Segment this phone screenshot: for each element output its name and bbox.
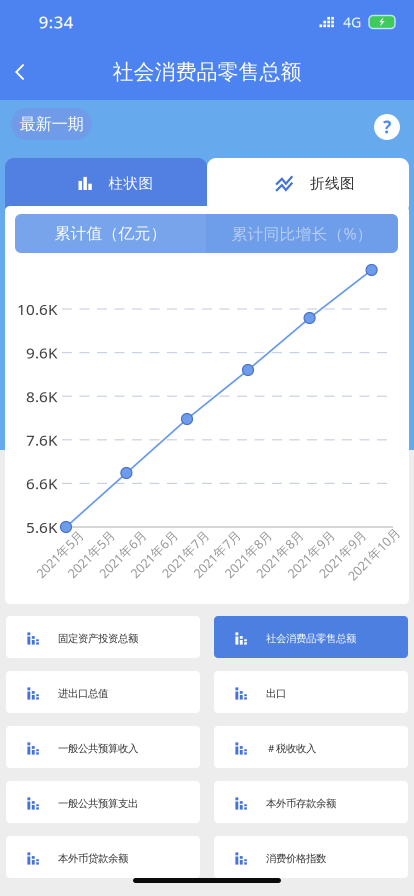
button[interactable]: 一般公共预算收入 <box>6 726 200 768</box>
staticText: 9:34 <box>38 10 73 34</box>
staticText: 2021年5月 <box>61 545 122 563</box>
staticText: 累计同比增长（%） <box>231 223 372 244</box>
staticText: 2021年9月 <box>312 545 373 563</box>
staticText: 2021年8月 <box>249 545 310 563</box>
staticText: 9.6K <box>26 342 57 363</box>
staticText: 10.6K <box>17 299 57 319</box>
staticText: 进出口总值 <box>58 687 108 700</box>
button[interactable]: 柱状图 <box>5 158 207 214</box>
staticText: 2021年9月 <box>281 545 342 563</box>
staticText: 一般公共预算收入 <box>58 742 138 755</box>
button[interactable]: 社会消费品零售总额 <box>214 616 408 658</box>
staticText: 2021年7月 <box>186 545 247 563</box>
staticText: ? <box>383 115 391 139</box>
button[interactable]: 进出口总值 <box>6 671 200 713</box>
staticText: 2021年8月 <box>218 545 279 563</box>
button[interactable]: Back <box>0 51 40 92</box>
staticText: 出口 <box>266 687 286 700</box>
staticText: ＃税收收入 <box>266 742 316 755</box>
staticText: 累计值（亿元） <box>54 223 166 243</box>
button[interactable]: Help <box>374 114 400 140</box>
button[interactable]: 消费价格指数 <box>214 836 408 878</box>
button[interactable]: 最新一期 <box>11 108 92 140</box>
staticText: 2021年7月 <box>155 545 216 563</box>
staticText: 2021年6月 <box>124 545 185 563</box>
button[interactable]: 累计值（亿元） <box>15 214 206 253</box>
staticText: 一般公共预算支出 <box>58 797 138 810</box>
staticText: 社会消费品零售总额 <box>112 59 301 85</box>
button[interactable]: ＃税收收入 <box>214 726 408 768</box>
staticText: 2021年5月 <box>29 545 90 563</box>
staticText: 最新一期 <box>19 114 83 134</box>
staticText: 6.6K <box>26 473 57 494</box>
staticText: 7.6K <box>26 429 57 450</box>
staticText: 4G <box>343 12 361 32</box>
button[interactable]: 累计同比增长（%） <box>206 214 398 253</box>
staticText: 消费价格指数 <box>266 852 326 865</box>
button[interactable]: 本外币存款余额 <box>214 781 408 823</box>
staticText: 5.6K <box>26 517 57 537</box>
staticText: 2021年10月 <box>340 545 408 563</box>
staticText: 8.6K <box>26 386 57 407</box>
button[interactable]: 出口 <box>214 671 408 713</box>
button[interactable]: 折线图 <box>207 158 409 214</box>
staticText: 2021年6月 <box>92 545 153 563</box>
staticText: 折线图 <box>310 174 355 193</box>
staticText: 本外币贷款余额 <box>58 852 128 865</box>
staticText: 本外币存款余额 <box>266 797 336 810</box>
button[interactable]: 本外币贷款余额 <box>6 836 200 878</box>
button[interactable]: 一般公共预算支出 <box>6 781 200 823</box>
staticText: 社会消费品零售总额 <box>266 632 356 645</box>
staticText: 固定资产投资总额 <box>58 632 138 645</box>
button[interactable]: 固定资产投资总额 <box>6 616 200 658</box>
staticText: 柱状图 <box>108 174 153 193</box>
